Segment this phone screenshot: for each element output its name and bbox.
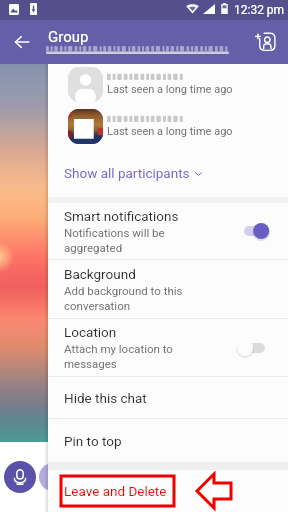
staticText: Show all participants — [64, 165, 190, 181]
button[interactable]: Toggle Location — [244, 334, 282, 362]
staticText: Background — [64, 266, 136, 282]
button[interactable]: Location — [48, 319, 288, 376]
staticText: Add background to this conversation — [64, 284, 183, 313]
staticText: Attach my location to messages — [64, 342, 173, 371]
button[interactable]: Leave and Delete — [48, 470, 288, 512]
button[interactable]: Hide this chat — [48, 377, 288, 418]
button[interactable]: Last seen a long time ago — [48, 64, 288, 106]
staticText: Pin to top — [64, 433, 122, 449]
staticText: Notifications will be aggregated — [64, 226, 165, 255]
staticText: Last seen a long time ago — [107, 125, 233, 138]
button[interactable]: Back — [8, 28, 36, 56]
button[interactable]: Smart notifications — [48, 203, 288, 259]
staticText: Leave and Delete — [64, 483, 167, 499]
staticText: Group — [48, 28, 89, 46]
staticText: 12:32 pm — [234, 3, 285, 17]
button[interactable]: Last seen a long time ago — [48, 106, 288, 148]
button[interactable]: Record voice message — [4, 461, 36, 493]
staticText: Hide this chat — [64, 390, 147, 406]
button[interactable]: Show all participants — [48, 148, 288, 197]
staticText: Location — [64, 324, 117, 340]
button[interactable]: Pin to top — [48, 419, 288, 462]
staticText: Smart notifications — [64, 208, 179, 224]
button[interactable]: Add participant — [250, 27, 280, 57]
button[interactable]: Background — [48, 260, 288, 318]
button[interactable]: Toggle Smart notifications — [244, 217, 282, 245]
staticText: Last seen a long time ago — [107, 83, 233, 96]
